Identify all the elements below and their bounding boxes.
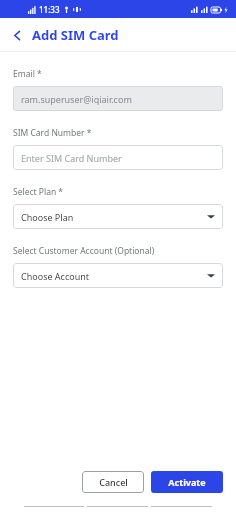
staticText: 11:33: [39, 4, 60, 15]
button[interactable]: Back: [6, 24, 28, 46]
staticText: SIM Card Number *: [13, 127, 92, 139]
staticText: Cancel: [99, 476, 128, 488]
button[interactable]: Enter SIM Card Number: [13, 145, 223, 170]
staticText: Enter SIM Card Number: [21, 152, 122, 164]
staticText: Select Plan *: [13, 186, 64, 198]
button[interactable]: Activate: [151, 471, 223, 493]
staticText: Choose Plan: [21, 211, 74, 223]
staticText: Add SIM Card: [32, 26, 119, 44]
staticText: Select Customer Account (Optional): [13, 245, 155, 257]
button[interactable]: Cancel: [82, 471, 144, 493]
staticText: Choose Account: [21, 270, 90, 282]
staticText: Email *: [13, 68, 42, 80]
button[interactable]: ram.superuser@iqiair.com: [13, 86, 223, 111]
staticText: ram.superuser@iqiair.com: [21, 93, 132, 105]
staticText: Activate: [168, 476, 206, 488]
button[interactable]: Choose Account: [13, 263, 223, 288]
button[interactable]: Choose Plan: [13, 204, 223, 229]
